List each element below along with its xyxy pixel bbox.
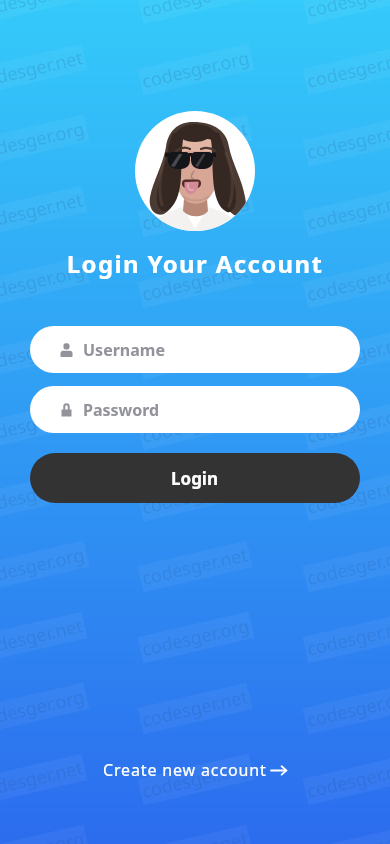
staticText: codesger.org	[305, 542, 390, 591]
staticText: codesger.net	[140, 258, 250, 307]
staticText: codesger.net	[140, 542, 250, 591]
button[interactable]: Password	[30, 386, 360, 433]
staticText: Create new account	[103, 759, 267, 781]
staticText: codesger.net	[305, 755, 390, 804]
button[interactable]: Login	[30, 453, 360, 503]
staticText: codesger.org	[0, 0, 87, 23]
staticText: codesger.org	[305, 258, 390, 307]
staticText: codesger.net	[140, 826, 250, 844]
staticText: codesger.org	[305, 0, 390, 23]
staticText: codesger.net	[140, 684, 250, 733]
staticText: codesger.org	[0, 826, 87, 844]
staticText: codesger.org	[0, 400, 87, 449]
staticText: codesger.net	[0, 187, 85, 236]
staticText: codesger.org	[0, 542, 87, 591]
staticText: codesger.net	[140, 400, 250, 449]
staticText: codesger.org	[140, 45, 252, 94]
staticText: codesger.net	[0, 755, 85, 804]
staticText: codesger.org	[140, 471, 252, 520]
staticText: codesger.org	[140, 187, 252, 236]
staticText: codesger.net	[0, 613, 85, 662]
staticText: codesger.net	[0, 45, 85, 94]
staticText: codesger.net	[305, 471, 390, 520]
button[interactable]: Create new account	[93, 754, 297, 786]
staticText: codesger.org	[305, 400, 390, 449]
other: Create new account	[271, 764, 287, 776]
staticText: codesger.org	[0, 684, 87, 733]
staticText: codesger.org	[0, 116, 87, 165]
staticText: codesger.org	[305, 684, 390, 733]
staticText: Login	[171, 467, 219, 490]
staticText: codesger.net	[0, 471, 85, 520]
staticText: codesger.org	[140, 613, 252, 662]
staticText: codesger.net	[0, 329, 85, 378]
button[interactable]: Username	[30, 326, 360, 373]
staticText: codesger.org	[305, 826, 390, 844]
staticText: codesger.org	[140, 329, 252, 378]
staticText: Username	[83, 339, 165, 361]
staticText: codesger.org	[140, 755, 252, 804]
staticText: Password	[83, 399, 160, 421]
staticText: codesger.org	[305, 116, 390, 165]
staticText: codesger.org	[0, 258, 87, 307]
staticText: Login Your Account	[0, 247, 390, 844]
staticText: codesger.net	[140, 116, 250, 165]
staticText: codesger.net	[140, 0, 250, 23]
staticText: codesger.net	[305, 187, 390, 236]
staticText: codesger.net	[305, 45, 390, 94]
staticText: codesger.net	[305, 613, 390, 662]
staticText: codesger.net	[305, 329, 390, 378]
